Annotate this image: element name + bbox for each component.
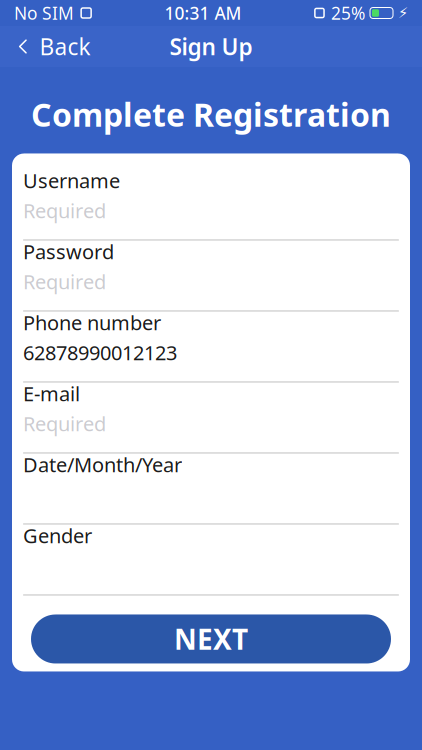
staticText: Required (23, 268, 106, 295)
staticText: Complete Registration (31, 93, 391, 135)
staticText: Password (23, 238, 114, 265)
staticText: 62878990012123 (23, 339, 177, 366)
staticText: Sign Up (169, 31, 252, 61)
staticText: Username (23, 167, 120, 194)
button[interactable]: Back (0, 26, 103, 67)
staticText: Back (40, 31, 91, 61)
staticText: 10:31 AM (165, 1, 242, 24)
staticText: Gender (23, 522, 92, 549)
staticText: Date/Month/Year (23, 451, 182, 478)
staticText: Phone number (23, 309, 161, 336)
staticText: No SIM (14, 1, 74, 24)
button[interactable]: NEXT (31, 614, 391, 663)
staticText: 25% (326, 1, 370, 24)
staticText: E-mail (23, 380, 80, 407)
staticText: Required (23, 410, 106, 437)
staticText: ⚡︎ (393, 5, 408, 21)
staticText: Required (23, 197, 106, 224)
staticText: NEXT (174, 620, 248, 658)
